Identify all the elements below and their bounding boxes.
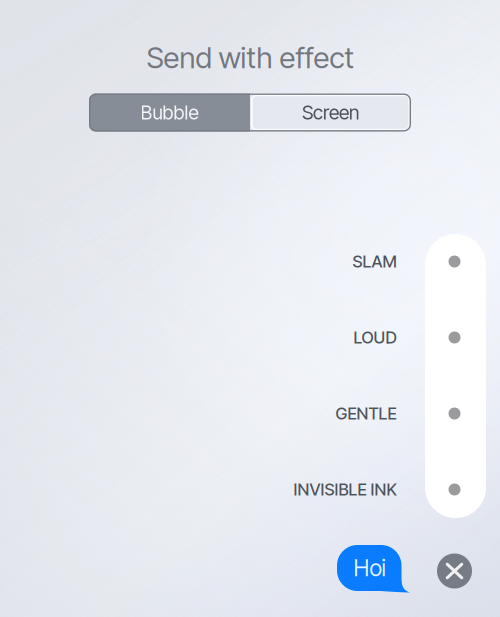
button[interactable]: Bubble [89, 93, 250, 131]
button[interactable]: Screen [250, 93, 411, 131]
button[interactable]: SLAM [176, 251, 396, 272]
button[interactable]: GENTLE [176, 403, 396, 424]
button[interactable]: INVISIBLE INK [176, 479, 396, 500]
staticText: GENTLE [335, 403, 396, 424]
staticText: LOUD [353, 327, 396, 348]
button[interactable]: Close [437, 553, 472, 588]
staticText: Send with effect [146, 40, 353, 75]
button[interactable]: LOUD [176, 327, 396, 348]
staticText: SLAM [352, 251, 396, 272]
staticText: Hoi [353, 554, 385, 582]
staticText: Screen [302, 101, 359, 124]
staticText: Bubble [140, 101, 198, 124]
staticText: INVISIBLE INK [293, 479, 396, 500]
